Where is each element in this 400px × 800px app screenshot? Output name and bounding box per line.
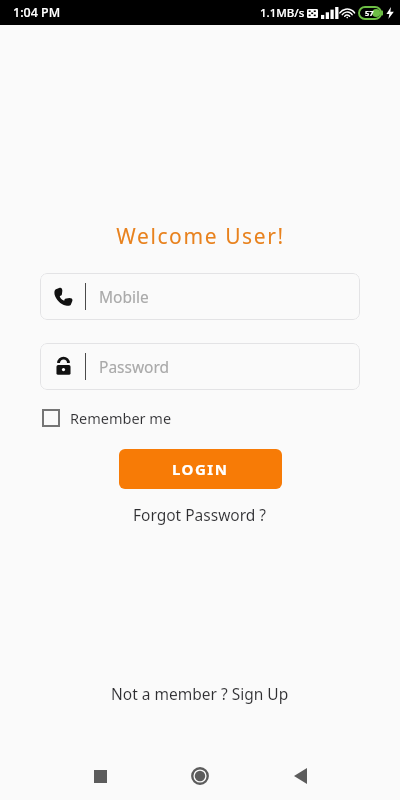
button[interactable]: Forgot Password ? (127, 501, 273, 528)
staticText: Mobile (99, 286, 149, 307)
staticText: 1.1MB/s (260, 5, 305, 21)
staticText: Welcome User! (116, 222, 285, 251)
button[interactable]: LOGIN (119, 449, 282, 489)
staticText: 57 (365, 8, 374, 18)
staticText: Remember me (70, 408, 172, 428)
staticText: Not a member ? Sign Up (111, 683, 289, 704)
staticText: Forgot Password ? (133, 504, 267, 525)
staticText: 1:04 PM (13, 4, 61, 21)
button[interactable]: Remember me (40, 404, 174, 432)
staticText: LOGIN (172, 459, 229, 479)
button[interactable]: Password (40, 343, 360, 390)
button[interactable]: Not a member ? Sign Up (103, 679, 297, 708)
button[interactable]: Recent apps (50, 752, 150, 800)
button[interactable]: Home (150, 752, 250, 800)
button[interactable]: Back (250, 752, 350, 800)
button[interactable]: Mobile (40, 273, 360, 320)
staticText: Password (99, 356, 170, 377)
